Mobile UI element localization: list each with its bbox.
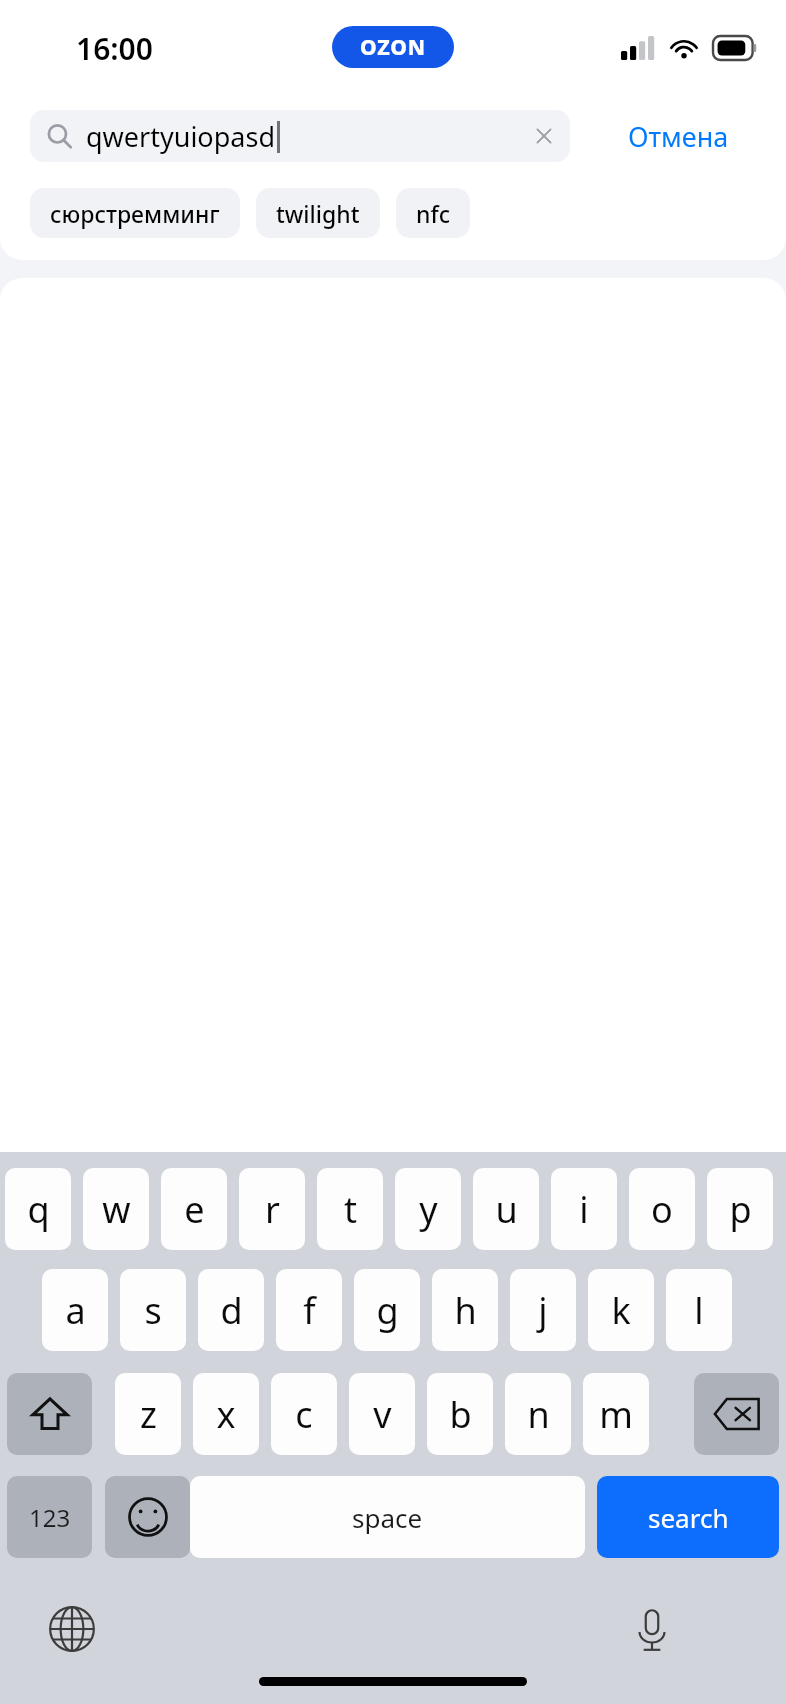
staticText: search: [648, 1500, 729, 1535]
staticText: s: [144, 1286, 162, 1335]
staticText: 123: [29, 1501, 71, 1534]
button[interactable]: x: [193, 1373, 259, 1455]
staticText: o: [651, 1185, 673, 1234]
button[interactable]: i: [551, 1168, 617, 1250]
button[interactable]: Dictation: [620, 1597, 684, 1661]
button[interactable]: u: [473, 1168, 539, 1250]
staticText: q: [27, 1185, 50, 1234]
staticText: t: [344, 1185, 357, 1234]
button[interactable]: r: [239, 1168, 305, 1250]
button[interactable]: w: [83, 1168, 149, 1250]
button[interactable]: q: [5, 1168, 71, 1250]
button[interactable]: сюрстремминг: [30, 188, 240, 238]
button[interactable]: b: [427, 1373, 493, 1455]
button[interactable]: Отмена: [570, 110, 786, 162]
button[interactable]: d: [198, 1269, 264, 1351]
staticText: j: [538, 1286, 548, 1335]
staticText: nfc: [416, 198, 450, 229]
button[interactable]: m: [583, 1373, 649, 1455]
staticText: g: [376, 1286, 399, 1335]
staticText: d: [220, 1286, 243, 1335]
button[interactable]: f: [276, 1269, 342, 1351]
button[interactable]: Backspace: [694, 1373, 779, 1455]
button[interactable]: Clear text: [518, 110, 570, 162]
button[interactable]: z: [115, 1373, 181, 1455]
button[interactable]: e: [161, 1168, 227, 1250]
staticText: e: [184, 1185, 205, 1234]
button[interactable]: p: [707, 1168, 773, 1250]
button[interactable]: [7, 1373, 92, 1455]
button[interactable]: t: [317, 1168, 383, 1250]
staticText: b: [449, 1390, 472, 1439]
staticText: twilight: [276, 198, 360, 229]
button[interactable]: o: [629, 1168, 695, 1250]
button[interactable]: nfc: [396, 188, 470, 238]
staticText: u: [495, 1185, 518, 1234]
staticText: OZON: [360, 33, 426, 62]
button[interactable]: s: [120, 1269, 186, 1351]
button[interactable]: l: [666, 1269, 732, 1351]
staticText: h: [454, 1286, 477, 1335]
button[interactable]: OZON: [332, 26, 454, 68]
staticText: k: [611, 1286, 631, 1335]
button[interactable]: c: [271, 1373, 337, 1455]
button[interactable]: twilight: [256, 188, 380, 238]
staticText: a: [65, 1286, 86, 1335]
button[interactable]: search: [597, 1476, 779, 1558]
button[interactable]: v: [349, 1373, 415, 1455]
button[interactable]: n: [505, 1373, 571, 1455]
button[interactable]: y: [395, 1168, 461, 1250]
staticText: i: [579, 1185, 589, 1234]
staticText: r: [265, 1185, 280, 1234]
staticText: m: [599, 1390, 633, 1439]
staticText: z: [140, 1390, 157, 1439]
button[interactable]: k: [588, 1269, 654, 1351]
button[interactable]: a: [42, 1269, 108, 1351]
staticText: qwertyuiopasd: [86, 118, 275, 155]
staticText: p: [729, 1185, 752, 1234]
staticText: w: [102, 1185, 131, 1234]
button[interactable]: Emoji: [105, 1476, 190, 1558]
staticText: n: [527, 1390, 550, 1439]
button[interactable]: g: [354, 1269, 420, 1351]
staticText: c: [295, 1390, 313, 1439]
staticText: space: [352, 1500, 423, 1535]
staticText: l: [694, 1286, 704, 1335]
staticText: x: [216, 1390, 236, 1439]
button[interactable]: h: [432, 1269, 498, 1351]
button[interactable]: Change keyboard: [40, 1597, 104, 1661]
staticText: сюрстремминг: [50, 198, 220, 229]
staticText: f: [303, 1286, 316, 1335]
button[interactable]: j: [510, 1269, 576, 1351]
staticText: Отмена: [628, 118, 729, 155]
button[interactable]: Numbers: [7, 1476, 92, 1558]
button[interactable]: qwertyuiopasd: [30, 110, 570, 162]
button[interactable]: space: [190, 1476, 585, 1558]
staticText: v: [373, 1390, 392, 1439]
staticText: 16:00: [76, 28, 153, 69]
staticText: y: [419, 1185, 438, 1234]
